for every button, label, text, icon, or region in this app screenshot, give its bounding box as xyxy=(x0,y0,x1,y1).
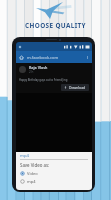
other: More options xyxy=(85,55,90,60)
staticText: 2 h xyxy=(29,70,34,74)
staticText: mp4 xyxy=(27,179,36,184)
staticText: Happy Birthday guys cut to Friend Jing xyxy=(19,78,68,82)
button[interactable]: Address bar m.facebook.com xyxy=(16,51,92,63)
staticText: mp4 xyxy=(20,153,29,159)
staticText: Save Video as: xyxy=(20,162,50,168)
button[interactable]: Download xyxy=(61,84,89,91)
staticText: Download xyxy=(69,85,86,90)
button[interactable]: Video xyxy=(20,171,88,176)
staticText: Video xyxy=(27,171,38,176)
button[interactable]: mp4 xyxy=(20,179,88,184)
staticText: m.facebook.com xyxy=(27,55,59,60)
staticText: Raja Vlash xyxy=(29,65,48,70)
staticText: CHOOSE QUALITY xyxy=(25,21,86,30)
